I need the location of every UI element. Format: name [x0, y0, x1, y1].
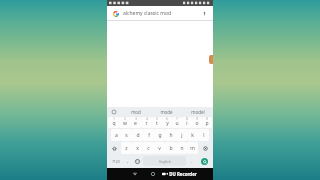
staticText: x: [136, 145, 139, 152]
staticText: f: [148, 132, 150, 139]
button[interactable]: 8: [182, 117, 192, 128]
staticText: w: [123, 120, 127, 127]
button[interactable]: 2: [119, 117, 130, 128]
button[interactable]: Function key: [108, 142, 121, 154]
staticText: .: [191, 158, 193, 165]
button[interactable]: k: [187, 129, 198, 141]
staticText: v: [158, 145, 161, 152]
button[interactable]: g: [154, 129, 165, 141]
staticText: d: [136, 132, 140, 139]
staticText: y: [166, 120, 169, 127]
staticText: c: [147, 145, 150, 152]
button[interactable]: b: [165, 142, 176, 154]
staticText: b: [169, 145, 173, 152]
staticText: l: [203, 132, 205, 139]
staticText: 6: [166, 117, 168, 121]
button[interactable]: x: [132, 142, 143, 154]
staticText: 8: [186, 117, 188, 121]
staticText: i: [186, 120, 188, 127]
button[interactable]: s: [121, 129, 132, 141]
staticText: q: [112, 120, 116, 127]
staticText: o: [195, 120, 199, 127]
staticText: model: [191, 109, 205, 115]
other: Voice search: [202, 11, 207, 16]
button[interactable]: 7: [172, 117, 182, 128]
button[interactable]: a: [111, 129, 121, 141]
staticText: ,: [127, 158, 129, 165]
button[interactable]: 1: [108, 117, 119, 128]
staticText: mode: [160, 109, 173, 115]
staticText: e: [134, 120, 137, 127]
staticText: u: [175, 120, 179, 127]
button[interactable]: alchemy classic mod: [107, 6, 213, 21]
button[interactable]: 9: [192, 117, 202, 128]
button[interactable]: mode: [151, 107, 182, 116]
button[interactable]: v: [154, 142, 165, 154]
button[interactable]: m: [187, 142, 198, 154]
button[interactable]: z: [121, 142, 132, 154]
staticText: k: [191, 132, 194, 139]
staticText: a: [115, 132, 118, 139]
button[interactable]: mod: [120, 107, 151, 116]
staticText: 4: [146, 117, 148, 121]
staticText: alchemy classic mod: [123, 10, 171, 17]
staticText: 5: [156, 117, 158, 121]
staticText: 0: [206, 117, 208, 121]
button[interactable]: 5: [152, 117, 162, 128]
button[interactable]: Home: [144, 168, 162, 180]
staticText: r: [145, 120, 148, 127]
staticText: s: [125, 132, 128, 139]
button[interactable]: l: [198, 129, 209, 141]
button[interactable]: Search: [197, 155, 211, 167]
button[interactable]: Comma: [123, 155, 132, 167]
button[interactable]: d: [132, 129, 143, 141]
button[interactable]: Function key: [198, 142, 212, 154]
button[interactable]: 6: [162, 117, 172, 128]
staticText: DU Recorder: [169, 171, 197, 177]
other: Side handle: [209, 55, 213, 64]
button[interactable]: 3: [130, 117, 141, 128]
button[interactable]: model: [182, 107, 213, 116]
staticText: 3: [135, 117, 137, 121]
staticText: g: [158, 132, 162, 139]
staticText: p: [205, 120, 209, 127]
button[interactable]: h: [165, 129, 176, 141]
staticText: j: [181, 132, 183, 139]
button[interactable]: ?123: [108, 155, 123, 167]
staticText: 9: [196, 117, 198, 121]
staticText: t: [156, 120, 158, 127]
staticText: English: [159, 159, 171, 164]
button[interactable]: Back: [126, 168, 144, 180]
staticText: z: [125, 145, 128, 152]
button[interactable]: Period: [187, 155, 196, 167]
staticText: n: [180, 145, 184, 152]
button[interactable]: 4: [141, 117, 152, 128]
button[interactable]: Emoji: [132, 155, 142, 167]
staticText: ?123: [112, 159, 120, 164]
staticText: m: [190, 145, 195, 152]
staticText: 2: [124, 117, 126, 121]
button[interactable]: English: [143, 156, 186, 166]
staticText: 1: [113, 117, 115, 121]
staticText: mod: [131, 109, 141, 115]
staticText: 7: [176, 117, 178, 121]
button[interactable]: 0: [202, 117, 212, 128]
button[interactable]: j: [176, 129, 187, 141]
button[interactable]: Expand suggestions: [107, 107, 120, 116]
button[interactable]: n: [176, 142, 187, 154]
button[interactable]: c: [143, 142, 154, 154]
button[interactable]: f: [143, 129, 154, 141]
staticText: h: [169, 132, 173, 139]
